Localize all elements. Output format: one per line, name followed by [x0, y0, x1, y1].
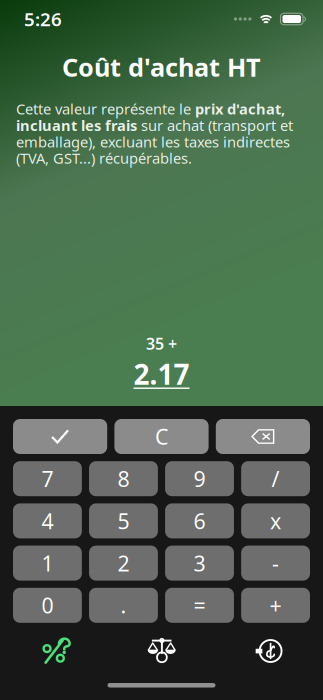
staticText: -: [272, 549, 279, 577]
staticText: x: [270, 507, 281, 535]
staticText: 35 +: [146, 333, 177, 354]
button[interactable]: Comparer: [108, 624, 215, 678]
staticText: 6: [193, 507, 205, 535]
button[interactable]: Effacer: [216, 419, 310, 454]
staticText: 2: [117, 549, 129, 577]
button[interactable]: Aide pourcentage: [0, 624, 108, 678]
staticText: 2.17: [133, 355, 189, 392]
button[interactable]: -: [241, 546, 310, 581]
button[interactable]: 1: [13, 546, 82, 581]
button[interactable]: 5: [89, 503, 158, 538]
button[interactable]: .: [89, 588, 158, 623]
button[interactable]: 7: [13, 461, 82, 496]
button[interactable]: 0: [13, 588, 82, 623]
button[interactable]: 4: [13, 503, 82, 538]
button[interactable]: Devise: [215, 624, 323, 678]
staticText: Cette valeur représente le prix d'achat,…: [16, 99, 293, 168]
staticText: /: [272, 464, 280, 493]
button[interactable]: 9: [165, 461, 234, 496]
staticText: C: [155, 422, 168, 451]
button[interactable]: x: [241, 503, 310, 538]
staticText: 0: [41, 591, 53, 619]
staticText: 8: [117, 464, 129, 493]
button[interactable]: 6: [165, 503, 234, 538]
staticText: 4: [41, 507, 53, 535]
button[interactable]: /: [241, 461, 310, 496]
button[interactable]: Valider: [13, 419, 107, 454]
staticText: 1: [41, 549, 53, 577]
staticText: 9: [193, 464, 205, 493]
staticText: 7: [41, 464, 53, 493]
button[interactable]: C: [114, 419, 209, 454]
button[interactable]: 8: [89, 461, 158, 496]
staticText: +: [270, 591, 282, 619]
staticText: =: [193, 591, 205, 619]
button[interactable]: 3: [165, 546, 234, 581]
staticText: 5:26: [24, 7, 62, 31]
button[interactable]: 2: [89, 546, 158, 581]
button[interactable]: =: [165, 588, 234, 623]
staticText: .: [120, 591, 126, 619]
button[interactable]: +: [241, 588, 310, 623]
staticText: Coût d'achat HT: [62, 50, 261, 84]
staticText: 3: [193, 549, 205, 577]
staticText: 5: [117, 507, 129, 535]
